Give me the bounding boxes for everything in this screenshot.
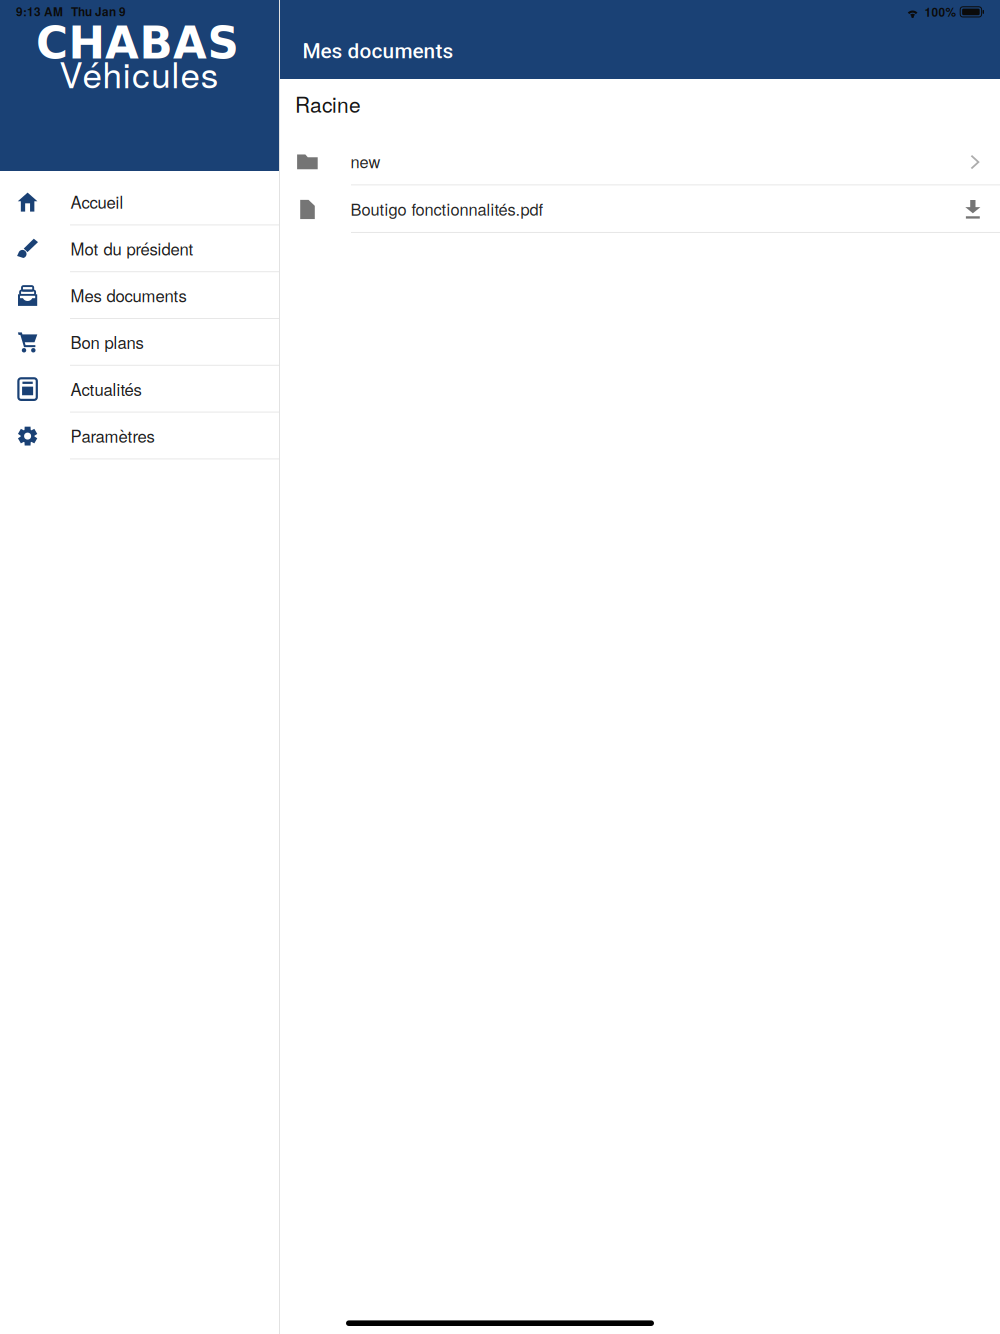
staticText: Bon plans [70, 330, 143, 354]
staticText: Actualités [70, 377, 141, 401]
button[interactable]: Télécharger [965, 199, 1000, 218]
button[interactable]: Mes documents [0, 272, 279, 319]
staticText: Boutigo fonctionnalités.pdf [350, 197, 543, 220]
button[interactable]: Actualités [0, 366, 279, 413]
staticText: Mot du président [70, 236, 193, 260]
button[interactable]: new [280, 138, 1000, 184]
button[interactable]: Ouvrir le dossier [970, 154, 1000, 168]
staticText: Racine [295, 89, 361, 119]
staticText: 9:13 AM [16, 3, 63, 20]
staticText: Thu Jan 9 [71, 3, 126, 20]
staticText: Mes documents [70, 283, 186, 307]
button[interactable]: Accueil [0, 179, 279, 225]
staticText: Paramètres [70, 424, 154, 447]
button[interactable]: Boutigo fonctionnalités.pdf [280, 185, 1000, 232]
button[interactable]: Bon plans [0, 319, 279, 366]
staticText: CHABAS [36, 18, 238, 69]
button[interactable]: Mot du président [0, 225, 279, 272]
button[interactable]: Paramètres [0, 413, 279, 459]
staticText: 100% [925, 3, 957, 20]
staticText: Véhicules [59, 48, 230, 98]
staticText: Accueil [70, 190, 123, 213]
staticText: Mes documents [302, 39, 453, 63]
staticText: new [350, 149, 380, 173]
